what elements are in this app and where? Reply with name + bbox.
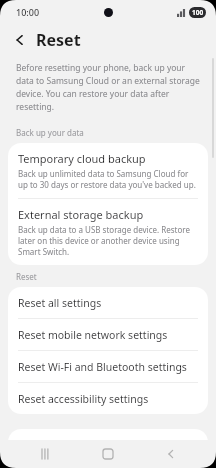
button[interactable]: Reset Wi-Fi and Bluetooth settings (8, 351, 208, 382)
staticText: Temporary cloud backup (18, 151, 146, 166)
staticText: Back up unlimited data to Samsung Cloud … (18, 168, 198, 190)
button[interactable]: Back (154, 440, 188, 468)
staticText: 100 (192, 8, 204, 17)
staticText: Reset all settings (18, 296, 102, 310)
button[interactable]: Reset accessibility settings (8, 383, 208, 414)
button[interactable]: External storage backup (8, 199, 208, 265)
button[interactable]: Back (10, 30, 30, 50)
button[interactable]: Temporary cloud backup (8, 143, 208, 198)
button[interactable]: Reset mobile network settings (8, 319, 208, 350)
button[interactable]: Home (91, 440, 125, 468)
staticText: Reset accessibility settings (18, 392, 149, 406)
button[interactable]: Reset all settings (8, 287, 208, 318)
staticText: Reset mobile network settings (18, 328, 168, 342)
button[interactable]: Recents (29, 440, 63, 468)
staticText: Reset (36, 29, 81, 51)
staticText: Back up data to a USB storage device. Re… (18, 224, 198, 257)
staticText: Reset (16, 271, 37, 282)
staticText: 10:00 (16, 6, 40, 18)
staticText: Before resetting your phone, back up you… (16, 62, 200, 113)
staticText: Reset Wi-Fi and Bluetooth settings (18, 360, 187, 374)
staticText: Back up your data (16, 127, 84, 138)
staticText: External storage backup (18, 207, 144, 222)
